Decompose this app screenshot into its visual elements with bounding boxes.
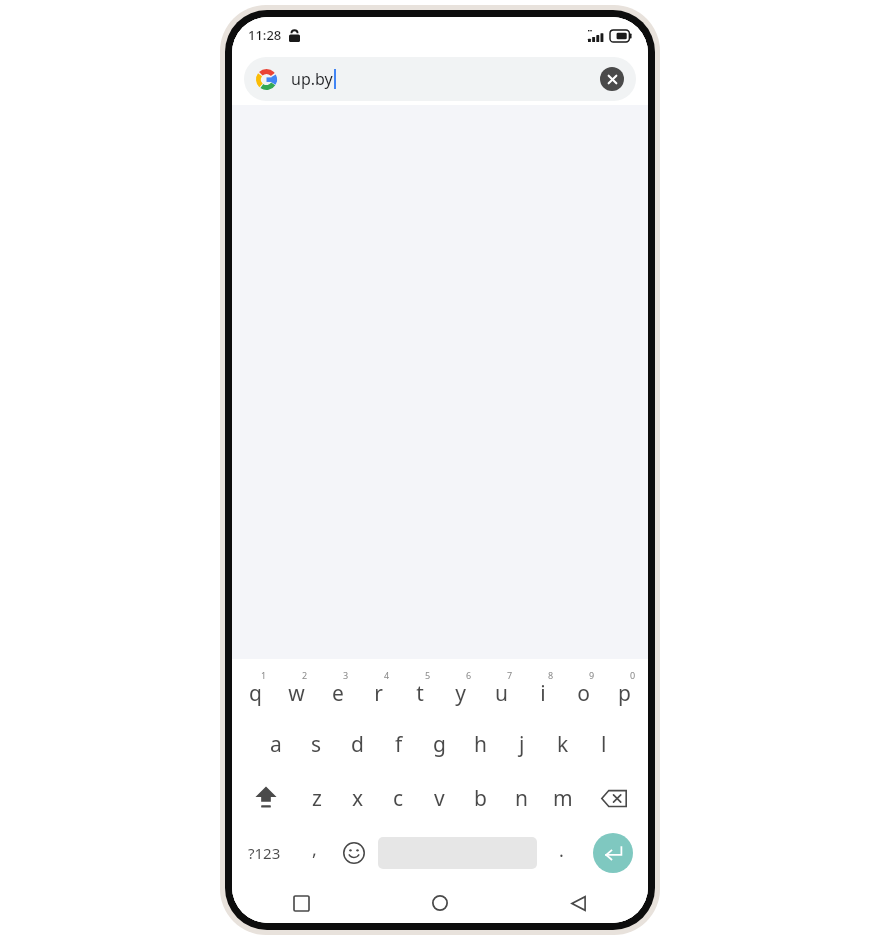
staticText: n — [515, 784, 528, 813]
staticText: j — [519, 730, 525, 759]
button[interactable]: h — [460, 717, 501, 771]
button[interactable]: 4 — [358, 663, 399, 717]
button[interactable]: 9 — [563, 663, 604, 717]
staticText: u — [495, 679, 508, 708]
staticText: m — [553, 784, 573, 813]
staticText: p — [618, 679, 631, 708]
staticText: 9 — [589, 669, 595, 681]
button[interactable]: z — [296, 771, 337, 825]
staticText: , — [312, 837, 317, 862]
staticText: x — [352, 784, 364, 813]
button[interactable]: a — [255, 717, 296, 771]
button[interactable]: Clear search — [600, 67, 624, 91]
staticText: up.by — [291, 68, 333, 90]
staticText: v — [434, 784, 445, 813]
staticText: a — [270, 730, 282, 759]
staticText: 5 — [425, 669, 431, 681]
button[interactable]: c — [378, 771, 419, 825]
button[interactable]: s — [296, 717, 337, 771]
button[interactable]: 1 — [235, 663, 276, 717]
button[interactable]: x — [337, 771, 378, 825]
staticText: g — [433, 730, 446, 759]
button[interactable]: 2 — [276, 663, 317, 717]
staticText: 2 — [302, 669, 308, 681]
staticText: 0 — [630, 669, 636, 681]
button[interactable]: 0 — [604, 663, 645, 717]
staticText: q — [249, 679, 262, 708]
button[interactable]: Home — [370, 883, 509, 923]
staticText: 6 — [466, 669, 472, 681]
staticText: 4 — [384, 669, 390, 681]
button[interactable]: Enter — [593, 833, 633, 873]
button[interactable]: 7 — [481, 663, 522, 717]
staticText: 3 — [343, 669, 349, 681]
staticText: 11:28 — [248, 26, 282, 44]
button[interactable]: 5 — [399, 663, 440, 717]
button[interactable]: , — [294, 825, 334, 881]
staticText: z — [312, 784, 322, 813]
staticText: s — [311, 730, 322, 759]
button[interactable]: . — [541, 825, 581, 881]
button[interactable]: Backspace — [583, 771, 645, 825]
button[interactable]: l — [583, 717, 624, 771]
staticText: 8 — [548, 669, 554, 681]
button[interactable]: v — [419, 771, 460, 825]
staticText: . — [559, 838, 564, 863]
button[interactable]: d — [337, 717, 378, 771]
staticText: y — [455, 679, 466, 708]
button[interactable]: b — [460, 771, 501, 825]
staticText: e — [332, 679, 344, 708]
staticText: l — [601, 730, 607, 759]
staticText: i — [540, 679, 546, 708]
button[interactable]: n — [501, 771, 542, 825]
button[interactable]: 8 — [522, 663, 563, 717]
staticText: 7 — [507, 669, 513, 681]
button[interactable]: Recent apps — [232, 883, 370, 923]
staticText: d — [351, 730, 364, 759]
button[interactable]: 6 — [440, 663, 481, 717]
button[interactable]: Back — [509, 883, 648, 923]
staticText: w — [288, 679, 305, 708]
button[interactable]: g — [419, 717, 460, 771]
staticText: f — [395, 730, 403, 759]
staticText: r — [374, 679, 383, 708]
staticText: k — [557, 730, 569, 759]
staticText: h — [474, 730, 487, 759]
button[interactable]: k — [542, 717, 583, 771]
staticText: ?123 — [248, 843, 281, 863]
staticText: o — [577, 679, 590, 708]
button[interactable]: 3 — [317, 663, 358, 717]
button[interactable]: f — [378, 717, 419, 771]
staticText: c — [393, 784, 404, 813]
button[interactable]: Shift — [235, 771, 296, 825]
button[interactable]: j — [501, 717, 542, 771]
button[interactable]: ?123 — [235, 825, 294, 881]
button[interactable]: up.by — [244, 57, 636, 101]
button[interactable]: m — [542, 771, 583, 825]
staticText: b — [474, 784, 487, 813]
staticText: 1 — [261, 669, 267, 681]
staticText: t — [416, 679, 424, 708]
button[interactable]: Emoji — [334, 825, 374, 881]
